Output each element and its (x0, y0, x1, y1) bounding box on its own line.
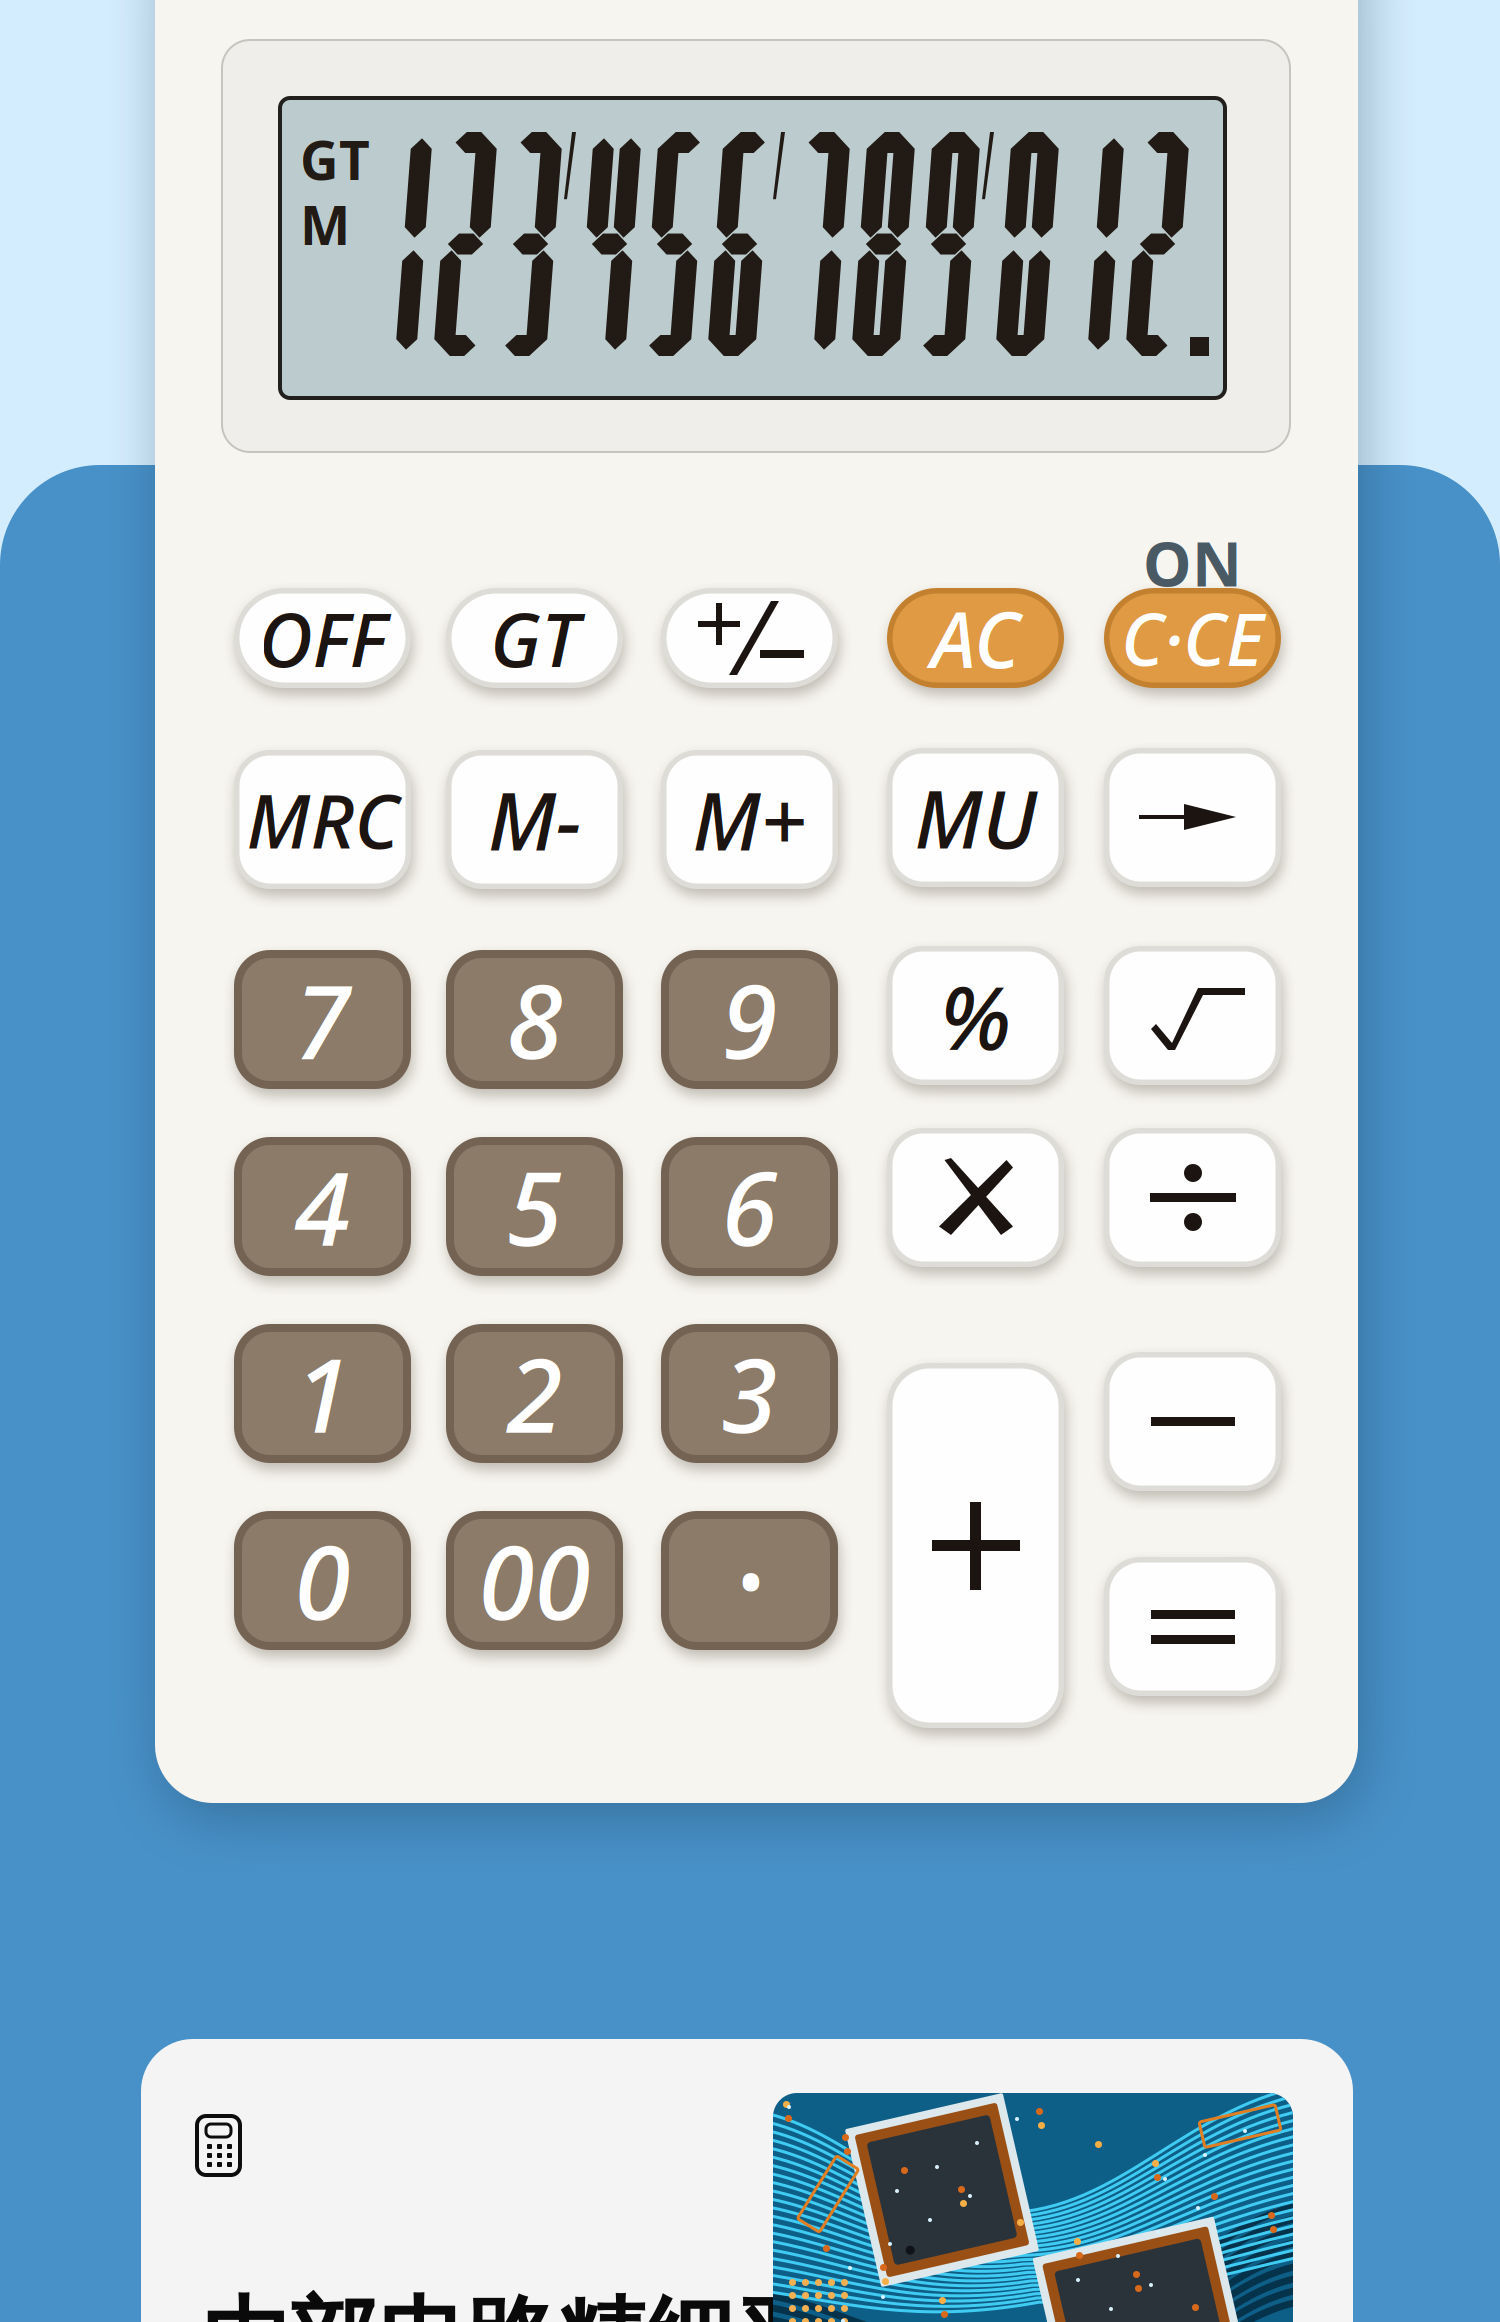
button[interactable]: M+ (661, 750, 838, 889)
staticText: 0 (294, 1513, 350, 1648)
staticText: 2 (506, 1326, 562, 1461)
staticText: 1 (294, 1326, 350, 1461)
staticText: GT (300, 124, 370, 195)
staticText: 4 (294, 1139, 350, 1274)
button[interactable]: 0 (234, 1511, 411, 1650)
button[interactable]: Square root (1104, 946, 1281, 1085)
staticText: 6 (721, 1139, 777, 1274)
button[interactable]: 2 (446, 1324, 623, 1463)
button[interactable]: Minus (1104, 1352, 1281, 1491)
button[interactable]: Multiply (887, 1128, 1064, 1267)
button[interactable]: 9 (661, 950, 838, 1089)
button[interactable]: Plus (887, 1363, 1064, 1728)
button[interactable]: • (661, 1511, 838, 1650)
button[interactable]: 4 (234, 1137, 411, 1276)
staticText: 5 (506, 1139, 562, 1274)
button[interactable]: 7 (234, 950, 411, 1089)
staticText: MU (914, 764, 1036, 871)
button[interactable]: C·CE (1104, 588, 1281, 688)
staticText: % (939, 957, 1011, 1074)
button[interactable]: M− (446, 750, 623, 889)
button[interactable]: Sign change (661, 588, 838, 688)
button[interactable]: GT (446, 588, 623, 688)
staticText: M− (488, 766, 581, 873)
button[interactable]: 1 (234, 1324, 411, 1463)
staticText: 9 (721, 952, 777, 1087)
button[interactable]: Divide (1104, 1128, 1281, 1267)
staticText: 8 (506, 952, 562, 1087)
staticText: M (300, 189, 350, 260)
staticText: OFF (258, 588, 386, 688)
staticText: 00 (478, 1513, 590, 1648)
staticText: AC (931, 587, 1020, 689)
button[interactable]: 00 (446, 1511, 623, 1650)
button[interactable]: MU (887, 748, 1064, 887)
button[interactable]: OFF (234, 588, 411, 688)
staticText: ON (1143, 522, 1242, 603)
staticText: 内部电路精细严密 (200, 2285, 912, 2322)
staticText: C·CE (1121, 590, 1264, 686)
button[interactable]: 5 (446, 1137, 623, 1276)
button[interactable]: % (887, 946, 1064, 1085)
staticText: GT (490, 588, 579, 688)
button[interactable]: 8 (446, 950, 623, 1089)
button[interactable]: Right shift (1104, 748, 1281, 887)
staticText: 7 (294, 952, 350, 1087)
button[interactable]: AC (887, 588, 1064, 688)
button[interactable]: Equals (1104, 1557, 1281, 1696)
staticText: MRC (246, 770, 398, 869)
staticText: 3 (721, 1326, 777, 1461)
button[interactable]: 6 (661, 1137, 838, 1276)
staticText: • (736, 1534, 762, 1627)
staticText: M+ (692, 766, 806, 873)
button[interactable]: 3 (661, 1324, 838, 1463)
button[interactable]: MRC (234, 750, 411, 889)
